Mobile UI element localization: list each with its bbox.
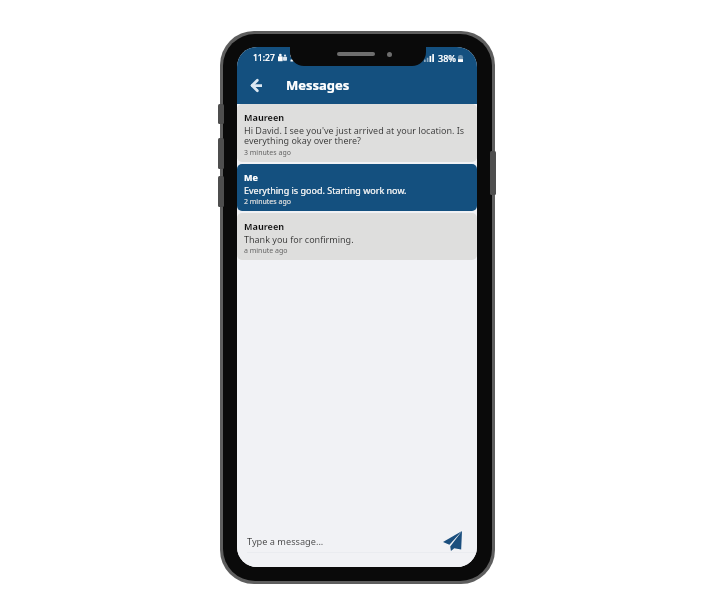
staticText: Everything is good. Starting work now. (244, 184, 407, 196)
staticText: Hi David. I see you've just arrived at y… (244, 124, 472, 147)
button[interactable]: Send (441, 530, 463, 552)
staticText: 11:27 (253, 52, 275, 64)
staticText: Maureen (244, 220, 285, 232)
staticText: Messages (286, 76, 350, 94)
staticText: Maureen (244, 111, 285, 123)
button[interactable]: Back (245, 74, 268, 97)
staticText: 38% (438, 52, 456, 64)
staticText: 3 minutes ago (244, 148, 291, 158)
button[interactable]: Me (237, 164, 477, 211)
button[interactable]: Maureen (237, 213, 477, 260)
button[interactable]: Maureen (237, 104, 477, 162)
staticText: Type a message... (247, 535, 324, 548)
staticText: 2 minutes ago (244, 197, 291, 207)
staticText: a minute ago (244, 246, 288, 256)
staticText: Me (244, 171, 258, 183)
staticText: Thank you for confirming. (244, 233, 354, 245)
